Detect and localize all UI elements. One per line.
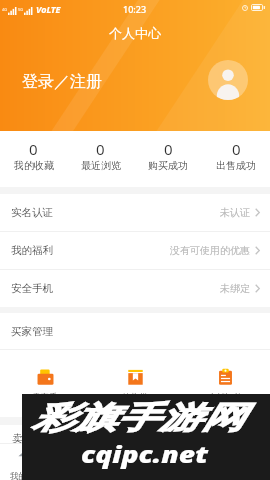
button[interactable]: 已售出 bbox=[54, 444, 108, 480]
staticText: 4G bbox=[2, 7, 8, 12]
staticText: cqipc.net bbox=[81, 439, 209, 469]
staticText: 没有可使用的优惠 bbox=[170, 244, 250, 257]
button[interactable]: 全部订单 bbox=[180, 350, 270, 417]
button[interactable]: 0 bbox=[0, 131, 67, 187]
button[interactable]: 安全手机 bbox=[0, 270, 270, 307]
button[interactable]: 待收货 bbox=[90, 350, 180, 417]
button[interactable]: 我的福利 bbox=[0, 232, 270, 269]
staticText: 卖家秀 bbox=[32, 392, 58, 403]
staticText: 0 bbox=[232, 139, 241, 159]
staticText: 卖家管理 bbox=[12, 432, 54, 445]
staticText: 未认证 bbox=[220, 206, 250, 219]
staticText: 安全手机 bbox=[11, 282, 53, 295]
staticText: 5G bbox=[18, 7, 24, 12]
staticText: 全部订单 bbox=[208, 392, 242, 403]
button[interactable]: 实名认证 bbox=[0, 194, 270, 231]
staticText: VoLTE bbox=[36, 3, 61, 15]
button[interactable]: 评价 bbox=[162, 444, 216, 480]
button[interactable]: 0 bbox=[67, 131, 134, 187]
button[interactable]: 我的发布 bbox=[0, 444, 54, 480]
button[interactable]: 0 bbox=[202, 131, 270, 187]
button[interactable]: 登录／注册 bbox=[22, 72, 102, 92]
button[interactable]: 卖家秀 bbox=[0, 350, 90, 417]
button[interactable]: 0 bbox=[134, 131, 202, 187]
staticText: 0 bbox=[96, 139, 105, 159]
staticText: 我的发布 bbox=[10, 471, 44, 480]
staticText: 0 bbox=[29, 139, 38, 159]
button[interactable]: 订单管理 bbox=[108, 444, 162, 480]
staticText: 买家管理 bbox=[11, 325, 53, 338]
staticText: 待收货 bbox=[122, 392, 148, 403]
staticText: 我的收藏 bbox=[14, 159, 54, 172]
staticText: 彩旗手游网 bbox=[32, 399, 244, 437]
staticText: 出售成功 bbox=[216, 159, 256, 172]
staticText: 个人中心 bbox=[109, 25, 161, 41]
staticText: 购买成功 bbox=[148, 159, 188, 172]
staticText: 实名认证 bbox=[11, 206, 53, 219]
button[interactable]: 卖家管理 bbox=[0, 425, 270, 443]
staticText: 最近浏览 bbox=[81, 159, 121, 172]
button[interactable]: Profile avatar bbox=[208, 60, 248, 100]
staticText: 0 bbox=[164, 139, 173, 159]
staticText: 10:23 bbox=[123, 3, 147, 15]
staticText: 未绑定 bbox=[220, 282, 250, 295]
staticText: 我的福利 bbox=[11, 244, 53, 257]
